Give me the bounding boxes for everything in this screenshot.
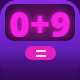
button[interactable]: Equals	[25, 46, 56, 60]
staticText: 0+9	[5, 4, 75, 37]
staticText: 0+9	[5, 4, 75, 37]
